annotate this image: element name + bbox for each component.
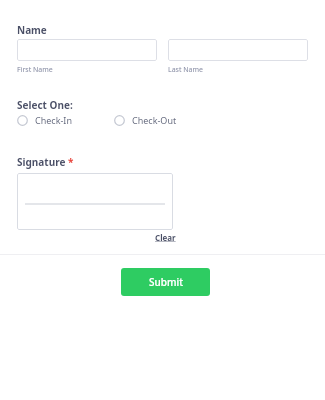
- staticText: Clear: [155, 232, 176, 243]
- button[interactable]: Signature pad: [17, 173, 173, 230]
- staticText: Submit: [149, 275, 183, 289]
- staticText: Check-In: [35, 114, 72, 126]
- button[interactable]: Check-Out: [114, 114, 177, 126]
- button[interactable]: Last Name: [168, 39, 308, 61]
- staticText: Name: [17, 23, 47, 37]
- button[interactable]: Clear: [155, 232, 176, 243]
- staticText: Check-Out: [132, 114, 177, 126]
- button[interactable]: Submit: [121, 268, 210, 296]
- staticText: Select One:: [17, 98, 73, 112]
- staticText: Last Name: [168, 65, 204, 75]
- button[interactable]: Check-In: [17, 114, 72, 126]
- button[interactable]: First Name: [17, 39, 157, 61]
- staticText: First Name: [17, 65, 53, 75]
- staticText: Signature *: [17, 155, 74, 169]
